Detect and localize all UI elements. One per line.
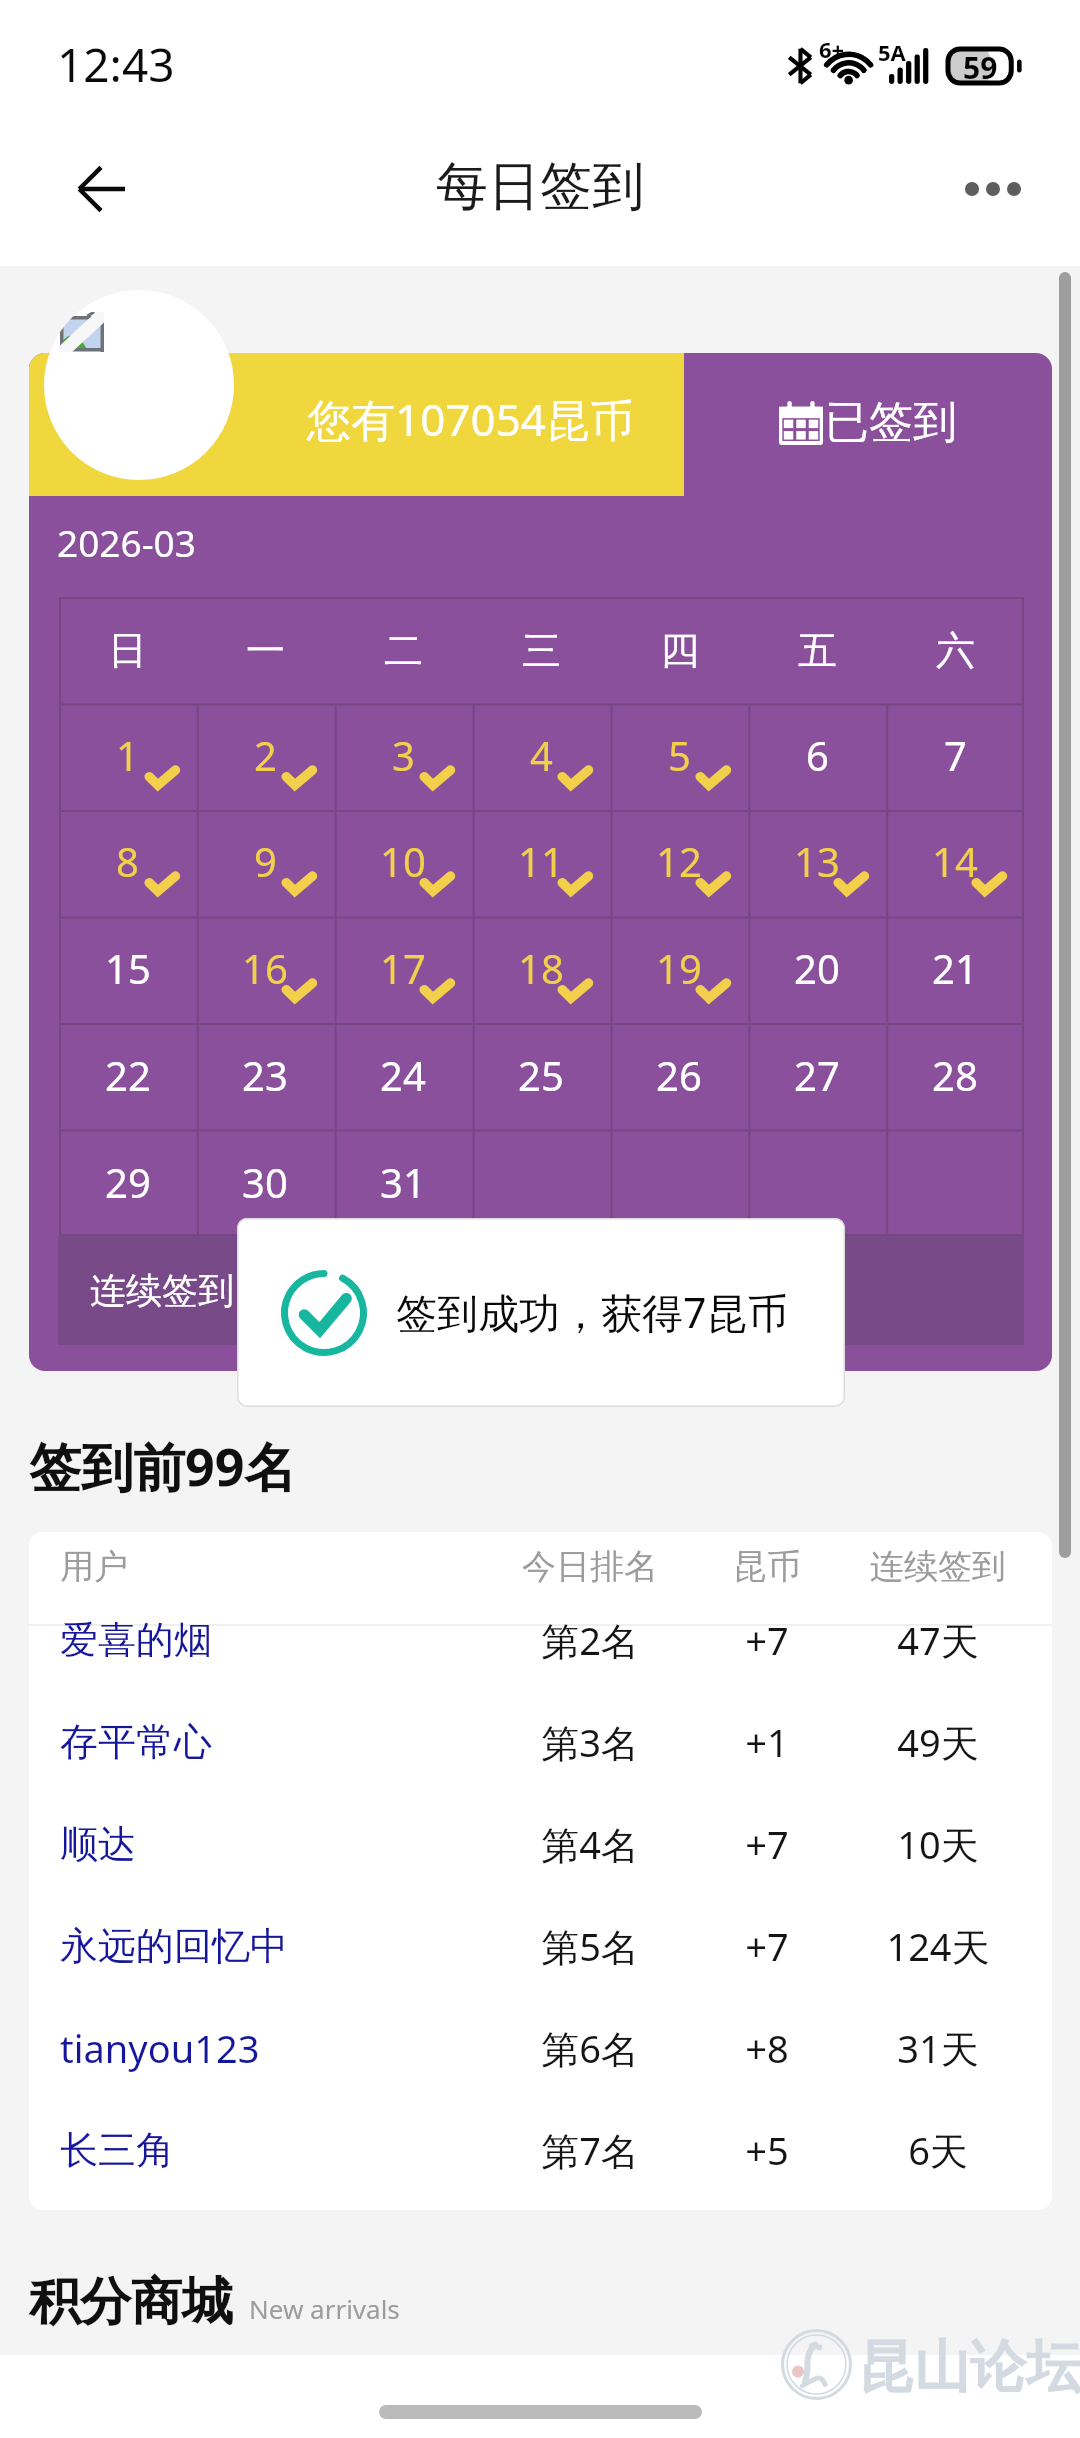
button[interactable]: 26 (610, 1022, 748, 1129)
staticText: 23 (242, 1048, 288, 1102)
staticText: +7 (679, 1614, 855, 1666)
staticText: 29 (105, 1155, 151, 1209)
button[interactable]: 6 (748, 703, 886, 809)
staticText: 2026-03 (57, 517, 196, 567)
staticText: 22 (105, 1048, 151, 1102)
button[interactable]: 19 (610, 915, 748, 1022)
staticText: 连续签到 (778, 1545, 1052, 1588)
staticText: 28 (932, 1048, 978, 1102)
staticText: 用户 (60, 1545, 128, 1588)
staticText: 第4名 (430, 1818, 750, 1870)
staticText: 六 (936, 626, 975, 675)
button[interactable]: 10 (334, 809, 472, 915)
button[interactable]: Back (45, 133, 156, 244)
staticText: 4 (530, 728, 553, 782)
staticText: 1 (116, 728, 139, 782)
staticText: 47天 (778, 1614, 1052, 1666)
staticText: 3 (392, 728, 415, 782)
staticText: 日 (108, 626, 147, 675)
staticText: 昆山论坛 (858, 2332, 1080, 2403)
button[interactable]: 25 (472, 1022, 610, 1129)
button[interactable]: 存平常心 (29, 1691, 1052, 1793)
button[interactable]: 16 (196, 915, 334, 1022)
button[interactable]: 11 (472, 809, 610, 915)
button[interactable]: 永远的回忆中 (29, 1895, 1052, 1997)
button[interactable]: 9 (196, 809, 334, 915)
button[interactable]: 已签到 (684, 353, 1052, 496)
button[interactable]: 14 (886, 809, 1024, 915)
staticText: 49天 (778, 1716, 1052, 1768)
button[interactable]: 7 (886, 703, 1024, 809)
staticText: 存平常心 (60, 1718, 212, 1766)
staticText: 已签到 (825, 395, 957, 450)
staticText: 爱喜的烟 (60, 1616, 212, 1664)
staticText: 长三角 (60, 2126, 174, 2174)
staticText: 19 (656, 941, 702, 995)
staticText: 第3名 (430, 1716, 750, 1768)
button[interactable]: 您有107054昆币 (29, 353, 684, 496)
staticText: 四 (660, 626, 699, 675)
button[interactable]: 17 (334, 915, 472, 1022)
staticText: 今日排名 (430, 1545, 750, 1588)
button[interactable]: 15 (59, 915, 196, 1022)
staticText: 21 (932, 941, 978, 995)
staticText: 13 (794, 834, 840, 888)
staticText: 14 (932, 834, 978, 888)
staticText: +7 (679, 1818, 855, 1870)
staticText: 10天 (778, 1818, 1052, 1870)
staticText: 20 (794, 941, 840, 995)
staticText: 五 (798, 626, 837, 675)
staticText: 24 (380, 1048, 426, 1102)
staticText: 第5名 (430, 1920, 750, 1972)
button[interactable]: 29 (59, 1129, 196, 1236)
button[interactable]: 23 (196, 1022, 334, 1129)
staticText: tianyou123 (60, 2022, 260, 2074)
staticText: 18 (518, 941, 564, 995)
button[interactable]: 20 (748, 915, 886, 1022)
button[interactable]: 1 (59, 703, 196, 809)
staticText: 31天 (778, 2022, 1052, 2074)
staticText: 9 (254, 834, 277, 888)
staticText: 30 (242, 1155, 288, 1209)
staticText: 二 (384, 626, 423, 675)
staticText: 5A (878, 37, 906, 67)
button[interactable]: 3 (334, 703, 472, 809)
staticText: 15 (105, 941, 151, 995)
button[interactable]: 13 (748, 809, 886, 915)
button[interactable]: 8 (59, 809, 196, 915)
button[interactable]: 爱喜的烟 (29, 1589, 1052, 1691)
button[interactable]: More options (940, 136, 1046, 242)
staticText: 您有107054昆币 (307, 389, 635, 449)
button[interactable]: 顺达 (29, 1793, 1052, 1895)
staticText: +5 (679, 2124, 855, 2176)
button[interactable]: 2 (196, 703, 334, 809)
button[interactable]: 18 (472, 915, 610, 1022)
button[interactable]: 31 (334, 1129, 472, 1236)
button[interactable]: 长三角 (29, 2099, 1052, 2201)
button[interactable]: tianyou123 (29, 1997, 1052, 2099)
staticText: 积分商城 (29, 2270, 233, 2334)
button[interactable]: User avatar (44, 290, 234, 480)
staticText: 27 (794, 1048, 840, 1102)
staticText: 6 (806, 728, 829, 782)
staticText: 顺达 (60, 1820, 136, 1868)
staticText: 签到前99名 (29, 1430, 297, 1501)
button[interactable]: 30 (196, 1129, 334, 1236)
staticText: +7 (679, 1920, 855, 1972)
button[interactable]: 12 (610, 809, 748, 915)
staticText: 11 (518, 834, 564, 888)
staticText: 12 (656, 834, 702, 888)
button[interactable]: 28 (886, 1022, 1024, 1129)
staticText: 17 (380, 941, 426, 995)
button[interactable]: 21 (886, 915, 1024, 1022)
staticText: 每日签到 (436, 154, 644, 220)
staticText: 连续签到 (90, 1268, 234, 1313)
staticText: +1 (679, 1716, 855, 1768)
button[interactable]: 4 (472, 703, 610, 809)
staticText: 第7名 (430, 2124, 750, 2176)
staticText: 26 (656, 1048, 702, 1102)
button[interactable]: 24 (334, 1022, 472, 1129)
button[interactable]: 27 (748, 1022, 886, 1129)
button[interactable]: 22 (59, 1022, 196, 1129)
button[interactable]: 5 (610, 703, 748, 809)
